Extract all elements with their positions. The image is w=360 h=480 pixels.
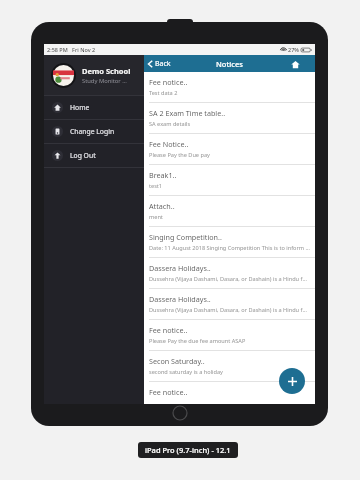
staticText: Singing Competition.. [149,232,222,242]
button[interactable]: Log Out [44,144,144,167]
staticText: Fee notice.. [149,325,188,335]
button[interactable]: Add notice [279,368,305,394]
staticText: Please Pay the Due pay [149,151,210,159]
button[interactable]: Change Login [44,120,144,143]
staticText: ment [149,213,163,221]
staticText: Secon Saturday.. [149,356,205,366]
button[interactable]: Back [144,57,175,71]
staticText: Notices [216,59,243,69]
button[interactable]: Fee Notice.. [144,134,315,164]
staticText: 2:58 PM Fri Nov 2 [47,46,96,53]
staticText: Fee Notice.. [149,139,189,149]
staticText: Study Monitor ... [82,77,127,85]
button[interactable]: Dassera Holidays.. [144,258,315,288]
staticText: 27% [288,46,299,53]
staticText: SA exam details [149,120,191,128]
staticText: Break1.. [149,170,177,180]
staticText: SA 2 Exam Time table.. [149,108,226,118]
staticText: Change Login [70,127,115,136]
button[interactable]: Secon Saturday.. [144,351,315,381]
button[interactable]: SA 2 Exam Time table.. [144,103,315,133]
staticText: Demo School [82,66,131,76]
button[interactable]: Attach.. [144,196,315,226]
staticText: iPad Pro (9.7-inch) - 12.1 [145,445,231,455]
staticText: Home [70,103,90,112]
staticText: Dassera Holidays.. [149,294,211,304]
staticText: test1 [149,182,163,190]
staticText: Attach.. [149,201,175,211]
button[interactable]: Break1.. [144,165,315,195]
staticText: Date: 11 August 2018 Singing Competition… [149,244,310,252]
button[interactable]: Home [44,96,144,119]
staticText: Dussehra (Vijaya Dashami, Dasara, or Das… [149,275,310,283]
button[interactable]: Singing Competition.. [144,227,315,257]
staticText: Dassera Holidays.. [149,263,211,273]
staticText: Fee notice.. [149,387,188,397]
button[interactable]: Fee notice.. [144,320,315,350]
staticText: Please Pay the due fee amount ASAP [149,337,246,345]
staticText: Fee notice.. [149,77,188,87]
button[interactable]: Home [289,58,301,70]
staticText: Log Out [70,151,96,160]
button[interactable]: Fee notice.. [144,72,315,102]
staticText: Test data 2 [149,89,178,97]
staticText: Dussehra (Vijaya Dashami, Dasara, or Das… [149,306,310,314]
staticText: Back [155,59,171,69]
other: Home button [172,405,188,421]
button[interactable]: Dassera Holidays.. [144,289,315,319]
button[interactable]: Fee notice.. [144,382,315,404]
staticText: second saturday is a holiday [149,368,223,376]
